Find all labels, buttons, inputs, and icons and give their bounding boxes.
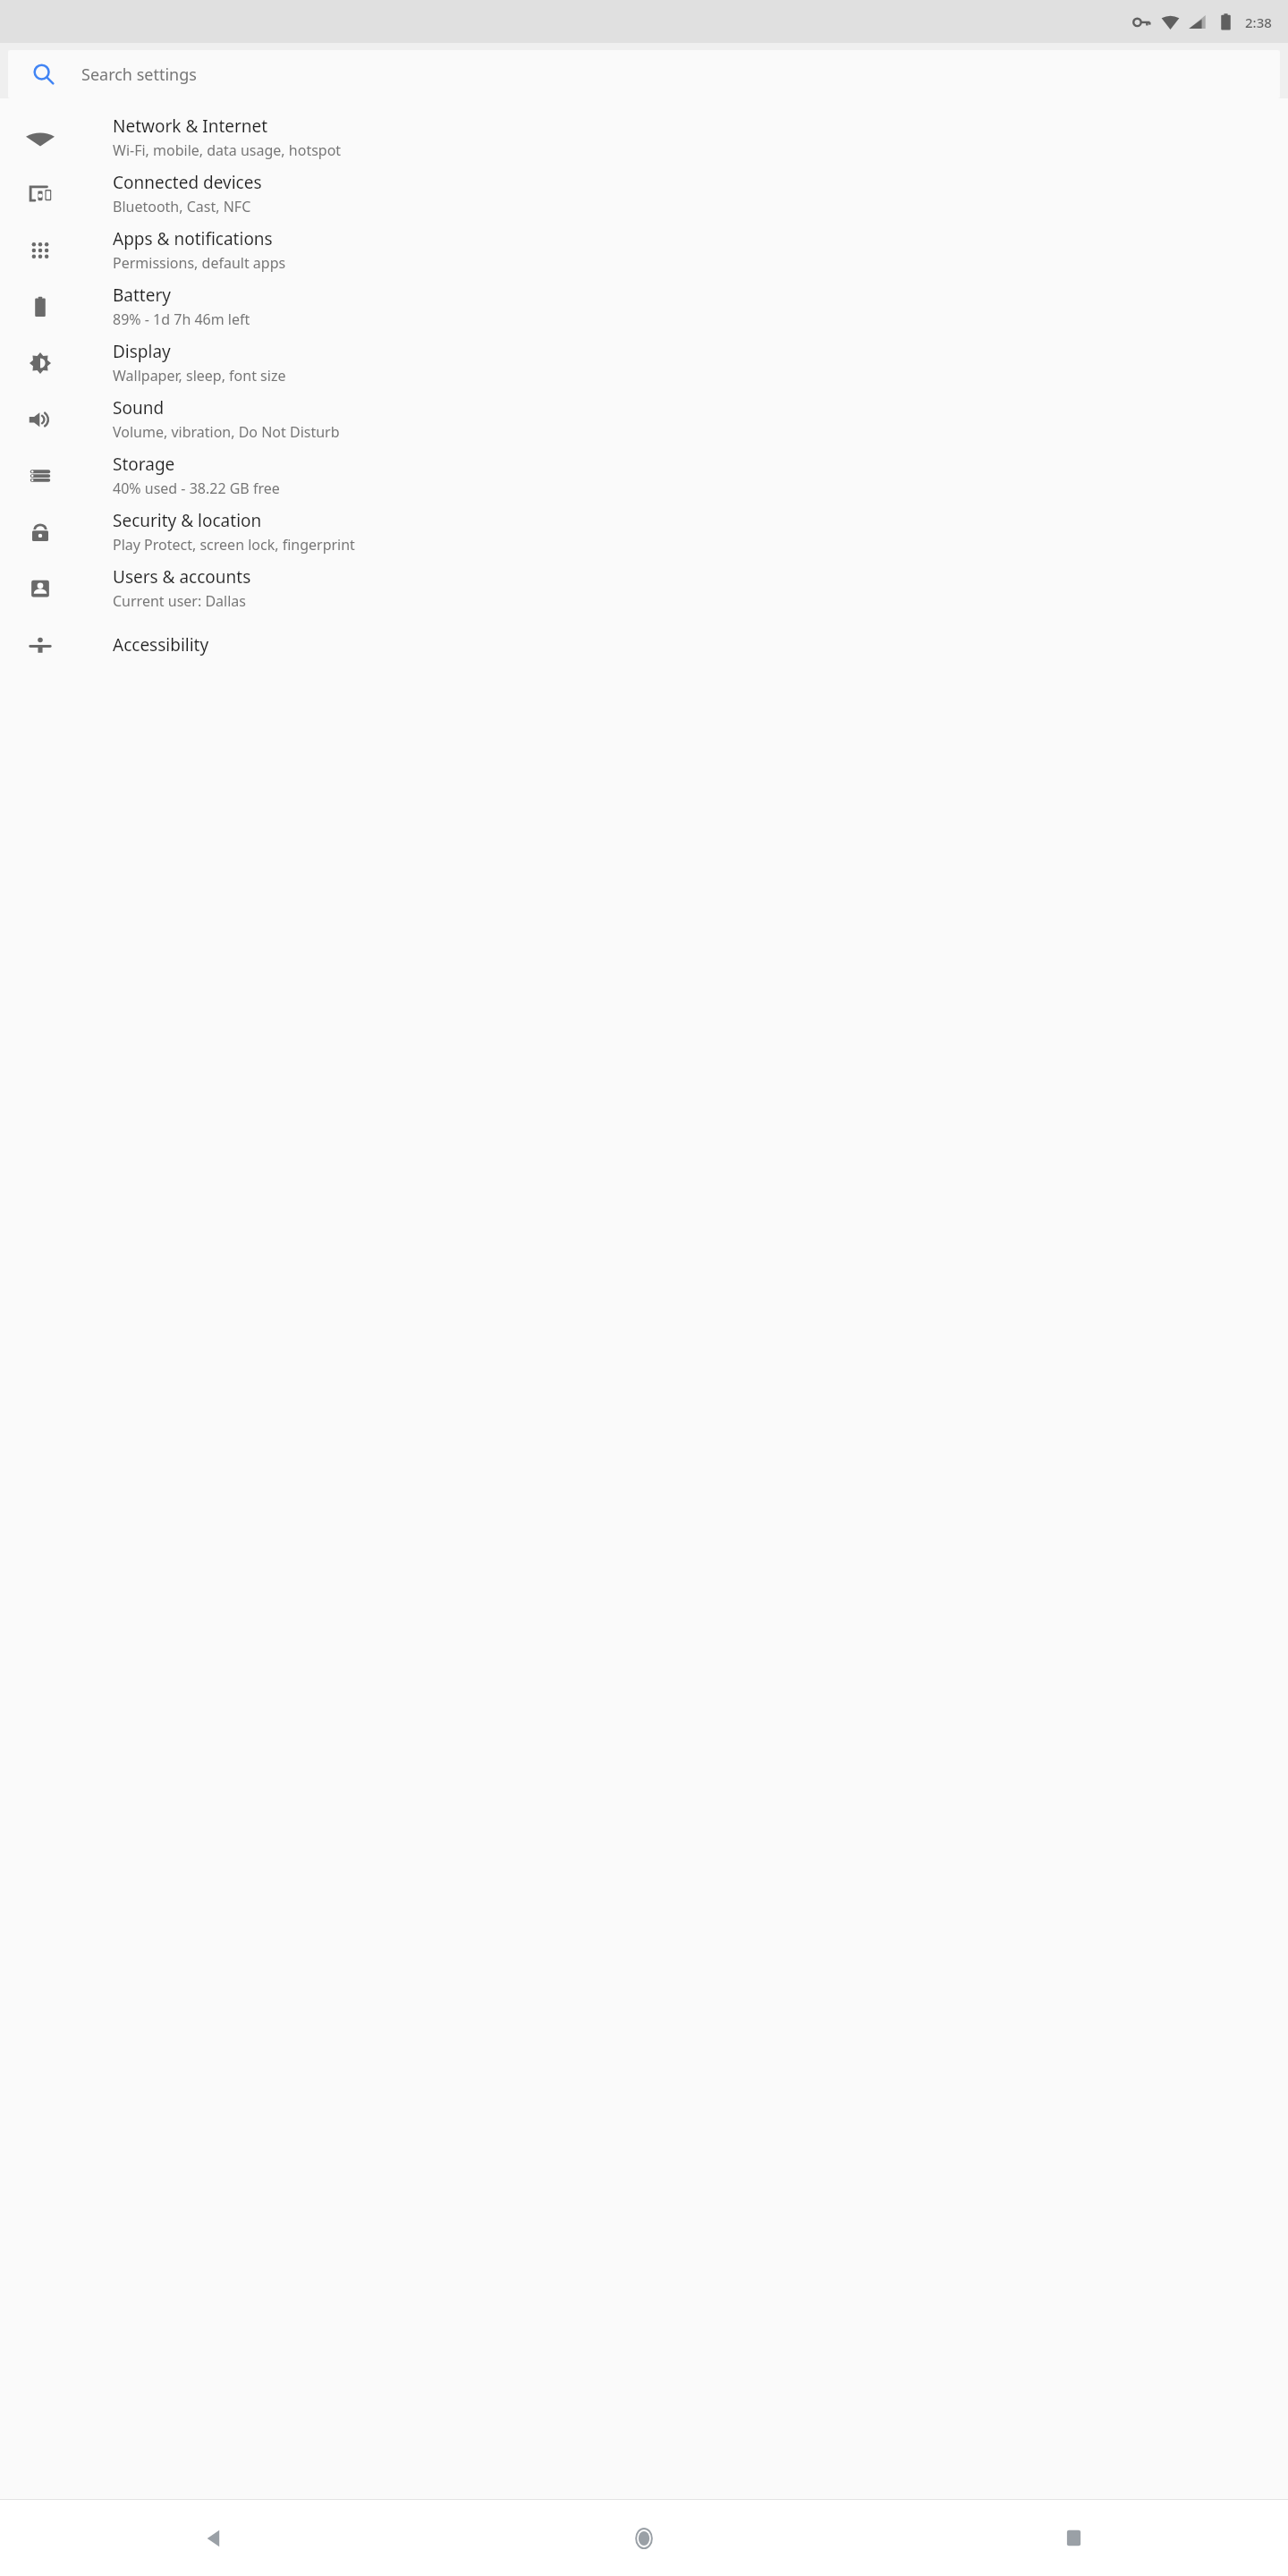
- staticText: Volume, vibration, Do Not Disturb: [113, 422, 340, 442]
- button[interactable]: Apps & notifications: [0, 222, 1288, 278]
- staticText: Users & accounts: [113, 565, 251, 589]
- button[interactable]: Sound: [0, 391, 1288, 447]
- other: Battery: [1216, 13, 1235, 31]
- button[interactable]: Recent apps: [859, 2500, 1288, 2576]
- button[interactable]: Battery: [0, 278, 1288, 335]
- button[interactable]: Search: [8, 50, 1280, 98]
- other: VPN: [1132, 13, 1151, 31]
- staticText: Search settings: [81, 64, 197, 86]
- button[interactable]: Storage: [0, 447, 1288, 504]
- button[interactable]: Accessibility: [0, 616, 1288, 673]
- staticText: 2:38: [1245, 13, 1272, 31]
- staticText: Wallpaper, sleep, font size: [113, 366, 286, 386]
- staticText: Display: [113, 340, 171, 363]
- other: Wi-Fi: [1161, 13, 1180, 31]
- staticText: Permissions, default apps: [113, 253, 286, 273]
- staticText: Storage: [113, 453, 175, 476]
- staticText: Wi-Fi, mobile, data usage, hotspot: [113, 140, 342, 160]
- button[interactable]: Home: [429, 2500, 859, 2576]
- staticText: Connected devices: [113, 171, 262, 194]
- staticText: Network & Internet: [113, 114, 268, 138]
- button[interactable]: Display: [0, 335, 1288, 391]
- staticText: Bluetooth, Cast, NFC: [113, 197, 251, 216]
- staticText: Accessibility: [113, 633, 209, 657]
- other: Signal: [1188, 13, 1207, 31]
- button[interactable]: Security & location: [0, 504, 1288, 560]
- staticText: Security & location: [113, 509, 262, 532]
- button[interactable]: Network & Internet: [0, 98, 1288, 165]
- staticText: Sound: [113, 396, 165, 419]
- button[interactable]: Back: [0, 2500, 429, 2576]
- staticText: Current user: Dallas: [113, 591, 246, 611]
- other: Search: [33, 64, 55, 85]
- staticText: Apps & notifications: [113, 227, 273, 250]
- staticText: Play Protect, screen lock, fingerprint: [113, 535, 355, 555]
- button[interactable]: Connected devices: [0, 165, 1288, 222]
- staticText: 89% - 1d 7h 46m left: [113, 309, 250, 329]
- staticText: 40% used - 38.22 GB free: [113, 479, 280, 498]
- button[interactable]: Users & accounts: [0, 560, 1288, 616]
- staticText: Battery: [113, 284, 171, 307]
